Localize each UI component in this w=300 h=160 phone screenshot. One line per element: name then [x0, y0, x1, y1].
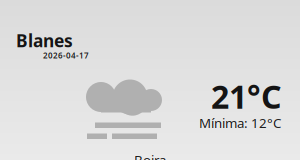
staticText: Boira — [134, 151, 166, 160]
staticText: 21°C — [211, 75, 282, 117]
staticText: Mínima: 12°C — [199, 114, 281, 132]
staticText: Blanes — [16, 29, 73, 52]
staticText: 2026-04-17 — [43, 50, 89, 61]
